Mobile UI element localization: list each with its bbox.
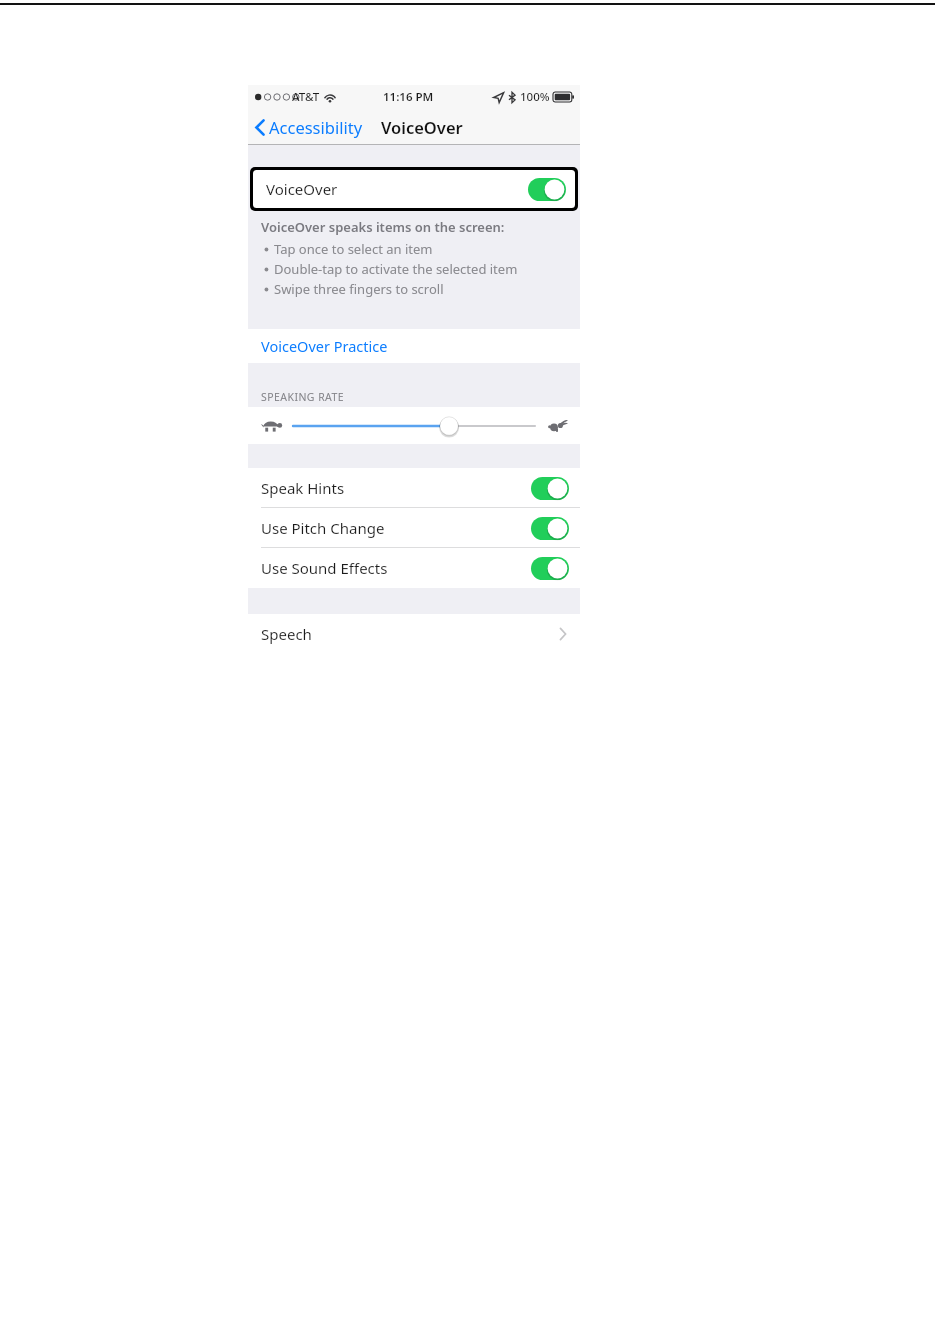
staticText: VoiceOver [266,179,338,199]
staticText: AT&T [292,89,320,105]
button[interactable]: Speak Hints [248,468,580,508]
button[interactable]: On [531,557,569,580]
staticText: SPEAKING RATE [261,390,345,404]
button[interactable]: Accessibility [248,112,369,142]
staticText: VoiceOver [381,116,463,138]
button[interactable]: Use Sound Effects [248,548,580,588]
staticText: Speak Hints [261,478,345,498]
staticText: Speech [261,624,312,644]
staticText: Swipe three fingers to scroll [274,280,444,298]
button[interactable]: Use Pitch Change [248,508,580,548]
staticText: Use Sound Effects [261,558,388,578]
staticText: 11:16 PM [383,89,434,105]
button[interactable]: VoiceOver Practice [248,329,580,363]
staticText: VoiceOver Practice [261,336,388,356]
staticText: Accessibility [269,116,363,138]
staticText: 100% [520,89,550,105]
button[interactable]: On [531,477,569,500]
button[interactable]: Speaking rate [293,411,535,441]
staticText: Tap once to select an item [274,240,433,258]
staticText: VoiceOver speaks items on the screen: [261,218,505,236]
button[interactable]: Speech [248,614,580,654]
button[interactable]: On [528,178,566,201]
button[interactable]: On [531,517,569,540]
staticText: Double-tap to activate the selected item [274,260,518,278]
button[interactable]: VoiceOver [253,170,575,208]
staticText: Use Pitch Change [261,518,385,538]
